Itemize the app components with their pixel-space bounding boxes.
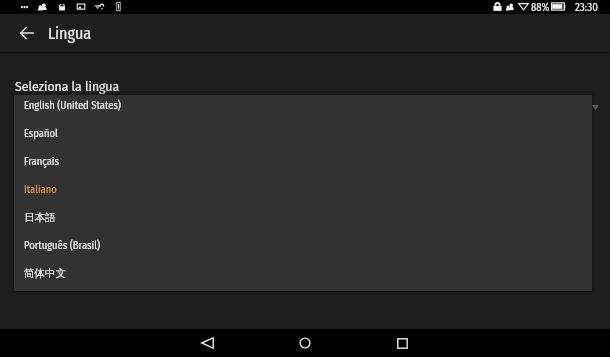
button[interactable]: 简体中文 (14, 263, 592, 291)
staticText: 日本語 (24, 211, 56, 224)
staticText: Português (Brasil) (24, 239, 100, 252)
button[interactable]: Português (Brasil) (14, 235, 592, 263)
staticText: Español (24, 127, 58, 140)
button[interactable]: Home (285, 329, 325, 357)
button[interactable]: Recents (382, 329, 422, 357)
button[interactable]: Español (14, 123, 592, 151)
button[interactable]: Italiano (14, 179, 592, 207)
staticText: English (United States) (24, 99, 121, 112)
staticText: 简体中文 (24, 267, 66, 280)
button[interactable]: Français (14, 151, 592, 179)
staticText: Lingua (48, 24, 92, 43)
button[interactable]: Back (187, 329, 227, 357)
staticText: 23:30 (575, 1, 598, 14)
button[interactable]: Back (12, 19, 40, 47)
staticText: 88% (531, 1, 550, 14)
button[interactable]: English (United States) (14, 95, 592, 123)
staticText: Italiano (24, 183, 57, 196)
staticText: Français (24, 155, 59, 168)
button[interactable]: 日本語 (14, 207, 592, 235)
staticText: Seleziona la lingua (15, 78, 120, 94)
